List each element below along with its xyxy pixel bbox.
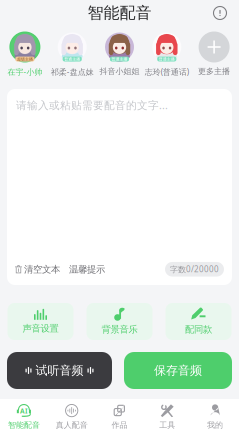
button[interactable]: 温馨提示 [60, 260, 105, 278]
staticText: 在宇-小帅 [7, 66, 42, 77]
button[interactable]: 配同款 [165, 303, 231, 340]
staticText: 温馨提示 [69, 263, 105, 275]
button[interactable]: 声音设置 [7, 303, 73, 340]
staticText: 超级主播 [17, 57, 33, 61]
button[interactable]: 普通主播 [143, 31, 190, 83]
staticText: 智能配音 [8, 420, 40, 430]
button[interactable]: 背景音乐 [86, 303, 152, 340]
button[interactable]: 普通主播 [48, 31, 96, 83]
staticText: 清空文本 [24, 263, 60, 275]
button[interactable]: 说明 [209, 2, 231, 24]
staticText: 我的 [207, 420, 223, 430]
staticText: 保存音频 [154, 363, 202, 378]
staticText: 普通主播 [159, 57, 175, 61]
button[interactable]: 工具 [143, 399, 191, 434]
button[interactable]: 作品 [96, 399, 143, 434]
staticText: 抖音小姐姐 [99, 66, 139, 76]
button[interactable]: 真人配音 [48, 399, 96, 434]
staticText: 配同款 [185, 324, 212, 335]
staticText: 背景音乐 [101, 324, 137, 335]
staticText: 字数0/20000 [170, 264, 219, 275]
button[interactable]: 我的 [191, 399, 239, 434]
button[interactable]: 更多主播 [190, 31, 238, 83]
staticText: 志玲(普通话) [145, 66, 189, 77]
staticText: 作品 [111, 420, 127, 430]
staticText: AI [20, 407, 28, 415]
button[interactable]: 普通主播 [96, 31, 143, 83]
staticText: 普通主播 [111, 57, 127, 61]
staticText: 请输入或粘贴需要配音的文字... [16, 98, 168, 112]
button[interactable]: 试听音频 [7, 352, 112, 389]
staticText: 祁柔-盘点妹 [51, 66, 94, 77]
button[interactable]: AI [0, 399, 48, 434]
button[interactable]: 超级主播 [1, 31, 48, 83]
button[interactable]: 保存音频 [124, 352, 232, 389]
staticText: 更多主播 [198, 66, 230, 76]
staticText: 真人配音 [56, 420, 88, 430]
staticText: 试听音频 [35, 363, 83, 378]
staticText: 普通主播 [64, 57, 80, 61]
staticText: 工具 [159, 420, 175, 430]
button[interactable]: 清空文本 [15, 260, 60, 278]
staticText: 声音设置 [22, 323, 58, 334]
staticText: 智能配音 [87, 3, 151, 23]
